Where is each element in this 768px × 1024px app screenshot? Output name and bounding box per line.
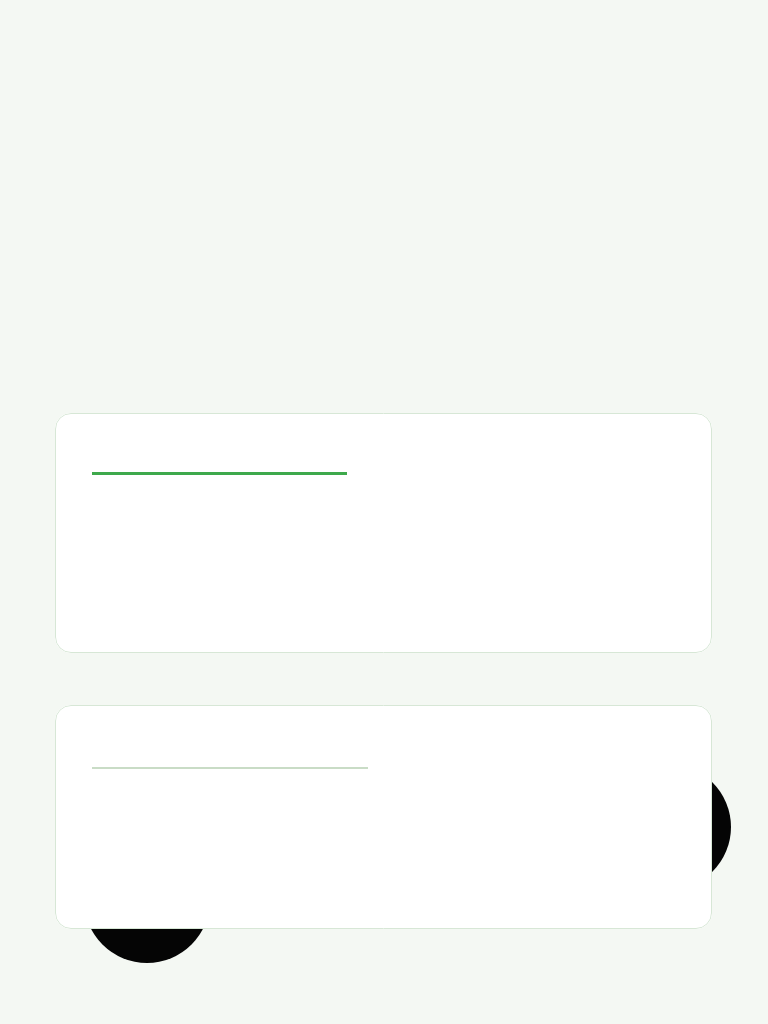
button[interactable]: Primary card — [55, 413, 712, 653]
button[interactable]: Secondary card — [55, 705, 712, 929]
